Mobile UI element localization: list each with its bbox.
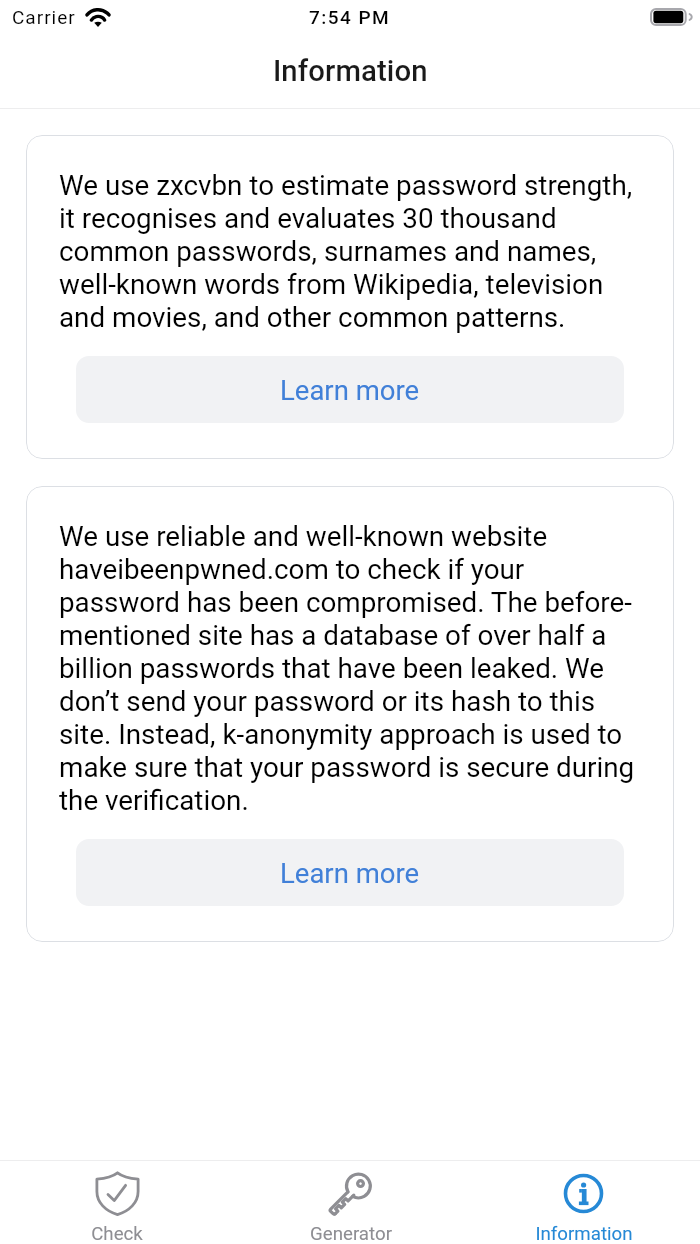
button[interactable]: Learn more <box>76 839 624 906</box>
staticText: We use reliable and well-known website h… <box>59 520 641 817</box>
staticText: Carrier <box>12 6 76 28</box>
staticText: We use zxcvbn to estimate password stren… <box>59 169 641 334</box>
staticText: Learn more <box>280 857 420 889</box>
other: Generator <box>328 1171 373 1216</box>
button[interactable]: Check <box>0 1161 234 1244</box>
button[interactable]: Information <box>467 1161 700 1244</box>
other: Information <box>561 1171 606 1216</box>
staticText: Information <box>273 54 428 88</box>
staticText: Generator <box>310 1223 392 1244</box>
staticText: 7:54 PM <box>309 6 391 28</box>
staticText: Check <box>91 1223 143 1244</box>
staticText: Information <box>535 1223 633 1244</box>
button[interactable]: Learn more <box>76 356 624 423</box>
button[interactable]: Generator <box>234 1161 467 1244</box>
staticText: Learn more <box>280 374 420 406</box>
other: Check <box>95 1171 140 1216</box>
